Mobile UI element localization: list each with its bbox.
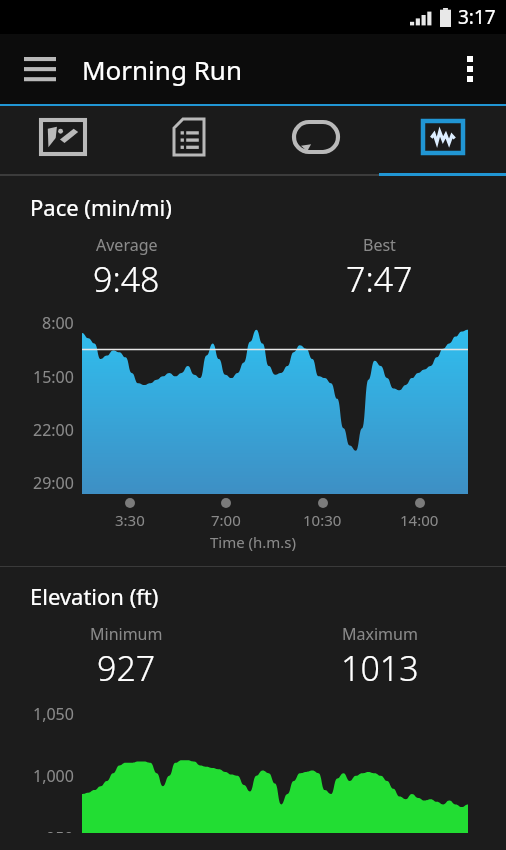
button[interactable]: Laps [252, 106, 379, 176]
staticText: 10:30 [303, 510, 342, 530]
staticText: Morning Run [82, 52, 242, 87]
staticText: 3:30 [115, 510, 145, 530]
staticText: 7:47 [346, 256, 413, 302]
staticText: 1,000 [33, 765, 74, 787]
staticText: 29:00 [33, 472, 74, 494]
staticText: Maximum [342, 623, 418, 645]
staticText: 15:00 [33, 366, 74, 388]
staticText: 14:00 [400, 510, 439, 530]
button[interactable]: More options [446, 45, 494, 93]
staticText: 9:48 [93, 256, 160, 302]
staticText: Elevation (ft) [30, 581, 159, 611]
staticText: 3:17 [458, 4, 496, 30]
button[interactable]: Map [0, 106, 126, 176]
staticText: 8:00 [42, 312, 74, 334]
button[interactable]: Details [126, 106, 252, 176]
staticText: Best [363, 234, 396, 256]
button[interactable]: Navigation menu [14, 43, 66, 95]
staticText: 22:00 [33, 419, 74, 441]
staticText: Pace (min/mi) [30, 192, 172, 222]
button[interactable]: Charts [379, 106, 506, 176]
staticText: 1013 [341, 645, 419, 691]
staticText: Average [96, 234, 158, 256]
staticText: Minimum [90, 623, 163, 645]
staticText: Time (h.m.s) [0, 532, 506, 552]
staticText: 1,050 [33, 703, 74, 725]
staticText: 927 [97, 645, 156, 691]
staticText: 950 [46, 827, 74, 833]
staticText: 7:00 [211, 510, 241, 530]
